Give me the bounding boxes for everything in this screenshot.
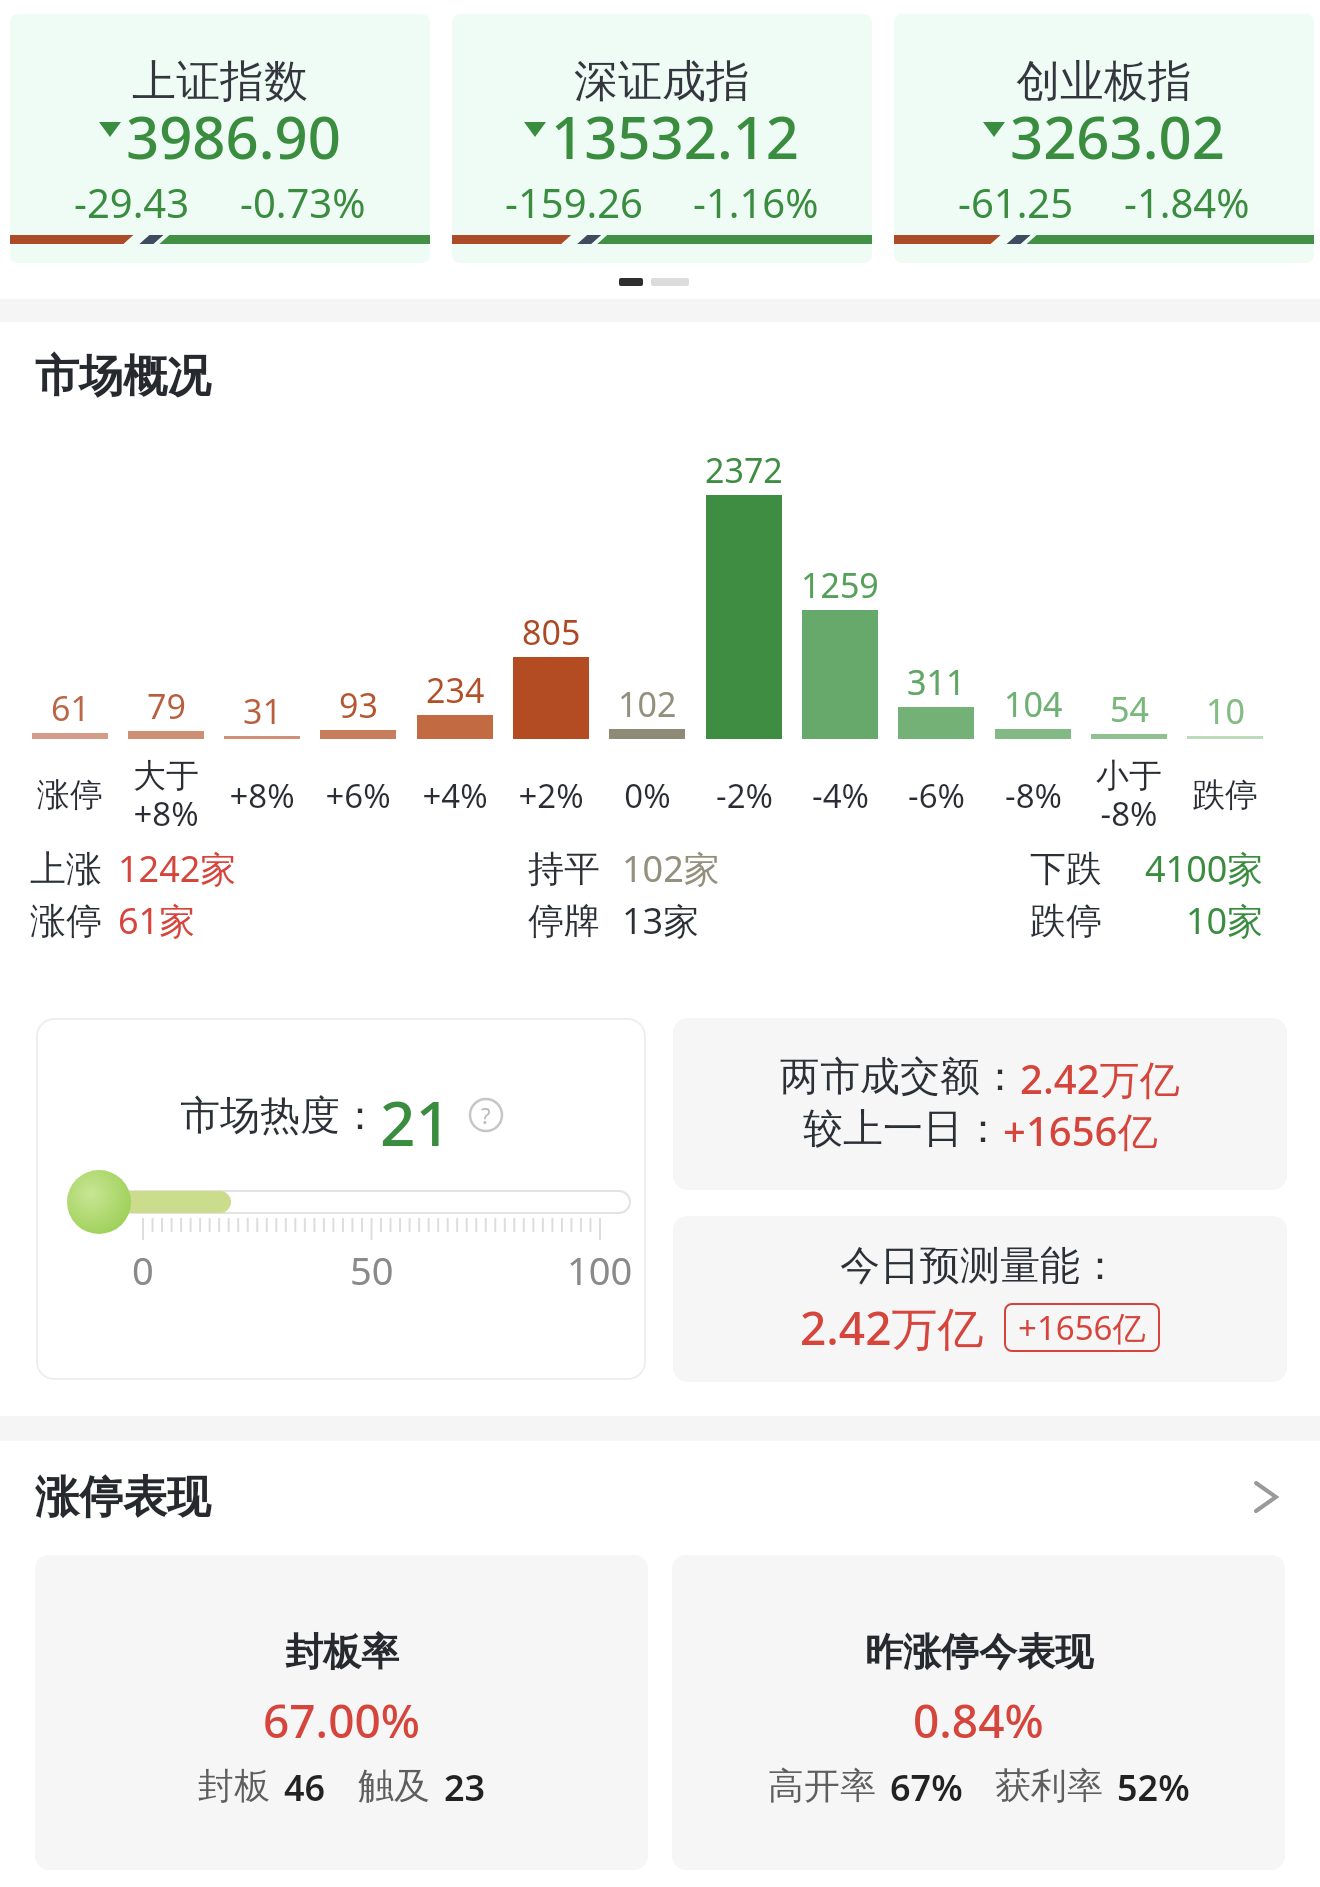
staticText: 104: [1004, 681, 1063, 721]
staticText: 3986.90: [126, 97, 341, 161]
staticText: 46: [284, 1763, 326, 1812]
staticText: 高开率: [768, 1763, 876, 1808]
staticText: 31: [243, 688, 282, 728]
staticText: 10家: [1186, 896, 1264, 945]
staticText: 1259: [801, 562, 879, 602]
staticText: 3263.02: [1010, 97, 1225, 161]
staticText: 跌停: [1030, 898, 1102, 943]
staticText: 0%: [624, 773, 671, 818]
staticText: 深证成指: [574, 54, 750, 109]
staticText: -61.25: [958, 175, 1074, 229]
staticText: -29.43: [74, 175, 190, 229]
staticText: 封板: [198, 1763, 270, 1808]
staticText: +8%: [229, 773, 295, 818]
staticText: -1.84%: [1124, 175, 1250, 229]
staticText: 52%: [1117, 1763, 1190, 1812]
button[interactable]: 封板率: [35, 1555, 648, 1870]
button[interactable]: 昨涨停今表现: [672, 1555, 1285, 1870]
button[interactable]: 两市成交额：: [673, 1018, 1287, 1190]
staticText: 封板率: [285, 1628, 399, 1676]
staticText: +4%: [422, 773, 488, 818]
button[interactable]: 今日预测量能：: [673, 1216, 1287, 1382]
staticText: 涨停表现: [35, 1470, 211, 1525]
staticText: 23: [444, 1763, 486, 1812]
staticText: 61: [51, 685, 90, 725]
button[interactable]: 上证指数: [10, 14, 430, 263]
staticText: 21: [380, 1080, 451, 1150]
staticText: +1656亿: [1003, 1103, 1158, 1158]
button[interactable]: 创业板指: [894, 14, 1314, 263]
staticText: 67.00%: [263, 1689, 420, 1752]
staticText: -4%: [812, 773, 869, 818]
staticText: 市场热度：: [180, 1090, 380, 1140]
staticText: 4100家: [1145, 844, 1264, 893]
staticText: 2.42万亿: [800, 1296, 984, 1359]
staticText: 311: [907, 659, 966, 699]
staticText: 93: [339, 682, 378, 722]
staticText: +2%: [518, 773, 584, 818]
staticText: -2%: [716, 773, 773, 818]
staticText: 获利率: [995, 1763, 1103, 1808]
staticText: 79: [147, 683, 186, 723]
staticText: 下跌: [1030, 846, 1102, 891]
staticText: 54: [1110, 686, 1149, 726]
staticText: 今日预测量能：: [840, 1240, 1120, 1290]
staticText: 234: [426, 667, 485, 707]
staticText: 较上一日：: [803, 1103, 1003, 1153]
staticText: 小于 -8%: [1096, 755, 1162, 835]
staticText: 停牌: [528, 898, 600, 943]
staticText: ?: [481, 1100, 491, 1130]
staticText: 0: [132, 1244, 154, 1296]
staticText: 1242家: [118, 844, 237, 893]
staticText: 100: [567, 1244, 633, 1296]
staticText: 2.42万亿: [1020, 1051, 1180, 1106]
staticText: 805: [522, 609, 581, 649]
staticText: 上证指数: [132, 54, 308, 109]
staticText: 61家: [118, 896, 196, 945]
staticText: +6%: [325, 773, 391, 818]
staticText: 0.84%: [913, 1689, 1044, 1752]
staticText: -8%: [1005, 773, 1062, 818]
staticText: 13532.12: [551, 97, 800, 161]
staticText: -6%: [908, 773, 965, 818]
staticText: 13家: [622, 896, 700, 945]
staticText: 上涨: [30, 846, 102, 891]
staticText: 10: [1206, 688, 1245, 728]
staticText: 昨涨停今表现: [865, 1628, 1093, 1676]
staticText: 大于 +8%: [133, 755, 199, 835]
staticText: 两市成交额：: [780, 1051, 1020, 1101]
staticText: +1656亿: [1018, 1305, 1146, 1350]
staticText: 102: [618, 681, 677, 721]
staticText: 102家: [622, 844, 720, 893]
staticText: 50: [350, 1244, 394, 1296]
staticText: 跌停: [1192, 774, 1258, 816]
staticText: 涨停: [30, 898, 102, 943]
staticText: 持平: [528, 846, 600, 891]
button[interactable]: 深证成指: [452, 14, 872, 263]
staticText: 涨停: [37, 774, 103, 816]
staticText: 2372: [705, 447, 783, 487]
staticText: 创业板指: [1016, 54, 1192, 109]
staticText: 触及: [358, 1763, 430, 1808]
staticText: -1.16%: [693, 175, 819, 229]
staticText: 67%: [890, 1763, 963, 1812]
staticText: -0.73%: [240, 175, 366, 229]
button[interactable]: 涨停表现: [0, 1462, 1320, 1532]
staticText: 市场概况: [35, 349, 211, 404]
staticText: -159.26: [505, 175, 643, 229]
button[interactable]: 市场热度：: [36, 1018, 646, 1380]
